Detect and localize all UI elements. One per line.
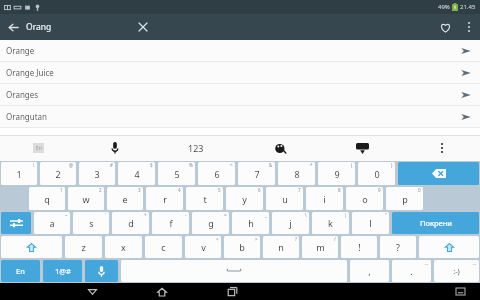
button[interactable]: a	[34, 212, 70, 234]
button[interactable]: Hide keyboard	[321, 135, 403, 161]
button[interactable]: t	[186, 187, 223, 210]
button[interactable]: m	[302, 236, 338, 258]
staticText: i	[323, 193, 326, 205]
button[interactable]: 4	[118, 162, 155, 185]
button[interactable]: f	[152, 212, 189, 234]
staticText: …	[473, 260, 477, 266]
button[interactable]: e	[107, 187, 143, 210]
button[interactable]: d	[112, 212, 149, 234]
other: Insert suggestion	[452, 40, 480, 61]
button[interactable]: c	[145, 236, 182, 258]
button[interactable]: 2	[40, 162, 76, 185]
button[interactable]: Back	[0, 14, 26, 40]
button[interactable]: 3	[79, 162, 115, 185]
staticText: #	[110, 162, 113, 168]
staticText: g	[208, 217, 214, 229]
staticText: _	[265, 212, 267, 218]
button[interactable]: Clear text	[130, 14, 156, 40]
button[interactable]: Orange Juice	[0, 62, 480, 83]
staticText: 123	[188, 142, 204, 154]
button[interactable]: En	[1, 260, 40, 282]
staticText: p	[402, 193, 408, 205]
button[interactable]: Add to favorites	[432, 14, 458, 40]
button[interactable]: ,	[350, 260, 389, 282]
button[interactable]: z	[65, 236, 102, 258]
button[interactable]: q	[29, 187, 65, 210]
button[interactable]: Orang	[26, 14, 130, 40]
button[interactable]: n	[263, 236, 299, 258]
button[interactable]: Shift	[419, 236, 479, 258]
button[interactable]: r	[146, 187, 183, 210]
button[interactable]: y	[226, 187, 263, 210]
staticText: *	[310, 162, 313, 168]
button[interactable]: 6	[198, 162, 235, 185]
button[interactable]: !	[341, 236, 377, 258]
staticText: |	[344, 212, 347, 218]
button[interactable]: v	[185, 236, 221, 258]
button[interactable]: b	[224, 236, 260, 258]
button[interactable]: Switch keyboard	[446, 283, 474, 300]
button[interactable]: Back	[78, 283, 106, 300]
staticText: 7	[254, 168, 260, 180]
staticText: ?	[396, 241, 400, 253]
button[interactable]: i	[306, 187, 343, 210]
button[interactable]: 9	[318, 162, 355, 185]
button[interactable]: Recent apps	[218, 283, 246, 300]
button[interactable]: j	[272, 212, 309, 234]
button[interactable]: ?	[380, 236, 416, 258]
button[interactable]: Input settings	[1, 212, 31, 234]
button[interactable]: u	[266, 187, 303, 210]
button[interactable]: Orange	[0, 40, 480, 61]
button[interactable]: .	[392, 260, 431, 282]
staticText: 2	[55, 168, 61, 180]
button[interactable]: Покрени	[392, 212, 479, 234]
staticText: Orang	[26, 21, 52, 33]
button[interactable]: Language	[0, 135, 76, 161]
staticText: ^	[230, 162, 233, 168]
button[interactable]: Voice input	[76, 135, 153, 161]
staticText: Orangutan	[6, 111, 452, 122]
staticText: y	[242, 193, 247, 205]
staticText: 2	[99, 187, 102, 193]
button[interactable]: o	[346, 187, 383, 210]
button[interactable]: g	[192, 212, 229, 234]
button[interactable]: Home	[148, 283, 176, 300]
button[interactable]: Numbers	[153, 135, 239, 161]
staticText: "	[385, 212, 387, 218]
button[interactable]: Orangutan	[0, 106, 480, 127]
button[interactable]: 8	[278, 162, 315, 185]
button[interactable]: Backspace	[398, 162, 479, 185]
button[interactable]: 5	[158, 162, 195, 185]
button[interactable]: 7	[238, 162, 275, 185]
button[interactable]: k	[312, 212, 349, 234]
button[interactable]: 0	[358, 162, 395, 185]
staticText: l	[369, 217, 372, 229]
button[interactable]: l	[352, 212, 389, 234]
staticText: n	[278, 241, 284, 253]
staticText: <	[216, 236, 219, 242]
staticText: v	[201, 241, 206, 253]
button[interactable]: :-)	[434, 260, 479, 282]
button[interactable]: Oranges	[0, 84, 480, 105]
button[interactable]: h	[232, 212, 269, 234]
button[interactable]: 1@#	[43, 260, 82, 282]
staticText: 3	[138, 187, 141, 193]
button[interactable]: Voice input	[85, 260, 118, 282]
button[interactable]: s	[73, 212, 109, 234]
staticText: q	[44, 193, 50, 205]
staticText: !	[33, 162, 35, 168]
button[interactable]: p	[386, 187, 423, 210]
staticText: .	[410, 265, 413, 277]
button[interactable]: Themes	[239, 135, 321, 161]
button[interactable]: Shift	[1, 236, 62, 258]
staticText: @	[69, 162, 74, 168]
staticText: h	[248, 217, 254, 229]
button[interactable]: Space	[121, 260, 347, 282]
button[interactable]: x	[105, 236, 142, 258]
button[interactable]: 1	[1, 162, 37, 185]
button[interactable]: More options	[458, 16, 480, 38]
button[interactable]: Keyboard settings	[403, 135, 480, 161]
staticText: e	[122, 193, 128, 205]
staticText: ?	[295, 236, 297, 242]
button[interactable]: w	[68, 187, 104, 210]
